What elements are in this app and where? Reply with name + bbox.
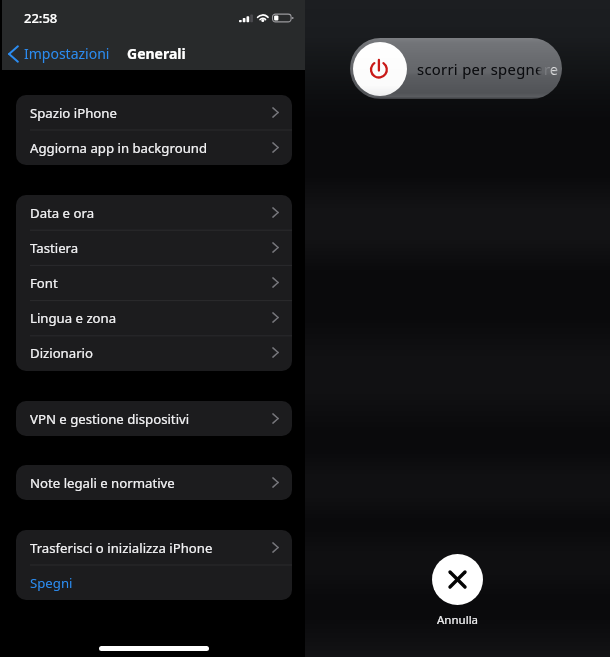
staticText: Dizionario — [30, 344, 93, 362]
button[interactable]: Font — [16, 265, 292, 300]
button[interactable]: Impostazioni — [2, 44, 116, 63]
staticText: Spazio iPhone — [30, 104, 117, 122]
button[interactable]: Trasferisci o inizializza iPhone — [16, 530, 292, 565]
staticText: Data e ora — [30, 204, 95, 222]
button[interactable]: Lingua e zona — [16, 300, 292, 335]
staticText: Aggiorna app in background — [30, 139, 208, 157]
button[interactable]: VPN e gestione dispositivi — [16, 401, 292, 436]
staticText: Note legali e normative — [30, 474, 175, 492]
staticText: scorri per spegnere — [417, 59, 559, 79]
button[interactable]: Spegni — [16, 565, 292, 600]
staticText: VPN e gestione dispositivi — [30, 410, 190, 428]
staticText: 22:58 — [24, 9, 58, 27]
button[interactable]: Spazio iPhone — [16, 95, 292, 130]
staticText: Spegni — [30, 574, 73, 592]
button[interactable]: Dizionario — [16, 335, 292, 370]
button[interactable]: Data e ora — [16, 195, 292, 230]
staticText: Annulla — [437, 612, 479, 628]
other: Spegni — [353, 42, 407, 96]
button[interactable]: Tastiera — [16, 230, 292, 265]
staticText: Lingua e zona — [30, 309, 117, 327]
staticText: Tastiera — [30, 239, 79, 257]
staticText: Generali — [127, 44, 186, 63]
button[interactable]: Note legali e normative — [16, 465, 292, 500]
button[interactable]: Annulla — [432, 554, 483, 605]
staticText: Trasferisci o inizializza iPhone — [30, 539, 213, 557]
staticText: Impostazioni — [24, 44, 110, 63]
button[interactable]: scorri per spegnere — [350, 38, 562, 99]
button[interactable]: Aggiorna app in background — [16, 130, 292, 165]
staticText: Font — [30, 274, 58, 292]
